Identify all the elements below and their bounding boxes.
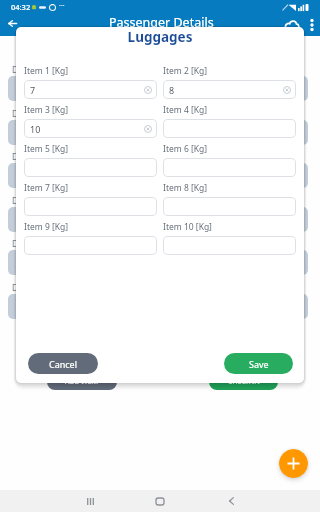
button[interactable] (163, 158, 296, 177)
staticText: Detail (12, 282, 34, 293)
button[interactable]: Cloud sync (283, 14, 301, 32)
staticText: Detail (12, 238, 34, 249)
button[interactable]: Home (146, 490, 174, 512)
staticText: Item 4 [Kg] (163, 104, 208, 116)
button[interactable] (163, 197, 296, 216)
staticText: 8 (169, 84, 175, 96)
button[interactable]: Back (3, 14, 21, 32)
staticText: 7 (30, 84, 36, 96)
staticText: ··· (59, 1, 65, 11)
button[interactable]: 10 (24, 119, 157, 138)
button[interactable]: More options (303, 15, 320, 35)
staticText: Cancel (49, 358, 78, 370)
staticText: Item 6 [Kg] (163, 143, 208, 155)
button[interactable]: CHECK IN (209, 374, 278, 390)
button[interactable] (24, 236, 157, 255)
button[interactable]: 8 (163, 80, 296, 99)
staticText: Item 8 [Kg] (163, 182, 208, 194)
button[interactable] (163, 119, 296, 138)
staticText: Luggages (16, 28, 304, 46)
button[interactable]: Save (224, 353, 293, 374)
staticText: 04:32 (11, 2, 31, 12)
staticText: Item 9 [Kg] (24, 221, 69, 233)
button[interactable]: Add (279, 449, 308, 478)
staticText: Item 1 [Kg] (24, 65, 69, 77)
staticText: 10 (30, 123, 41, 135)
staticText: Passenger Details (109, 14, 214, 31)
button[interactable]: Recents (76, 490, 104, 512)
button[interactable] (24, 158, 157, 177)
staticText: ADD ITEM (65, 377, 99, 387)
button[interactable] (24, 197, 157, 216)
staticText: Item 5 [Kg] (24, 143, 69, 155)
button[interactable]: ADD ITEM (47, 374, 117, 390)
staticText: Detail (12, 195, 34, 206)
button[interactable]: Cancel (28, 353, 98, 374)
staticText: Detail (12, 108, 34, 119)
staticText: Detail (12, 151, 34, 162)
button[interactable]: Back (217, 490, 245, 512)
button[interactable]: 7 (24, 80, 157, 99)
staticText: Save (249, 358, 269, 370)
staticText: Item 3 [Kg] (24, 104, 69, 116)
button[interactable] (163, 236, 296, 255)
staticText: Item 10 [Kg] (163, 221, 212, 233)
staticText: Item 7 [Kg] (24, 182, 69, 194)
staticText: Item 2 [Kg] (163, 65, 208, 77)
staticText: Detail (12, 64, 34, 75)
staticText: CHECK IN (228, 377, 260, 387)
